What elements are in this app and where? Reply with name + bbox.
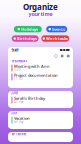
- staticText: Vacation: [14, 116, 30, 121]
- button[interactable]: Vacation: [8, 115, 73, 124]
- staticText: 9:41: [11, 47, 18, 53]
- staticText: SEPTEMBER: [11, 132, 26, 136]
- staticText: WEDNESDAY: [11, 59, 27, 63]
- staticText: JUNE: [11, 91, 17, 95]
- staticText: your time: [28, 10, 52, 18]
- button[interactable]: Meeting with Ann: [8, 63, 73, 72]
- staticText: Events: [52, 26, 65, 32]
- staticText: Sarah's Birthday: [14, 96, 45, 101]
- staticText: All day: [14, 120, 23, 124]
- button[interactable]: Work tasks: [41, 35, 69, 42]
- staticText: Meeting with Ann: [14, 64, 50, 69]
- button[interactable]: Project documentation: [8, 72, 73, 81]
- staticText: Organize: [23, 2, 58, 12]
- button[interactable]: Birthdays: [12, 35, 39, 42]
- staticText: All day: [14, 100, 23, 104]
- staticText: 11:30: [14, 77, 23, 81]
- staticText: Project documentation: [14, 73, 58, 78]
- staticText: Work tasks: [46, 36, 68, 41]
- staticText: Holidays: [21, 26, 38, 32]
- button[interactable]: Events: [46, 26, 67, 32]
- staticText: JULY: [11, 111, 17, 115]
- staticText: Birthdays: [17, 36, 37, 41]
- button[interactable]: Holidays: [14, 26, 42, 32]
- button[interactable]: Sarah's Birthday: [8, 95, 73, 104]
- staticText: 9:00: [14, 68, 21, 72]
